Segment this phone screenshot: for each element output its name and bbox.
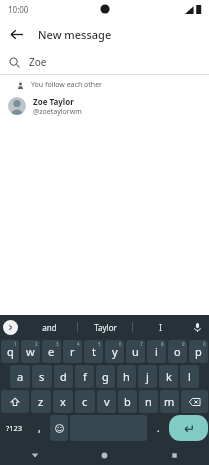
staticText: 1 <box>14 341 17 347</box>
staticText: and <box>42 322 57 333</box>
button[interactable]: v <box>97 390 116 413</box>
button[interactable]: q <box>1 340 19 363</box>
button[interactable]: s <box>32 365 52 388</box>
button[interactable]: a <box>10 365 30 388</box>
button[interactable]: r <box>63 340 82 363</box>
button[interactable]: Back <box>0 18 32 50</box>
staticText: f <box>83 369 87 384</box>
button[interactable]: Taylor <box>78 315 132 339</box>
staticText: I <box>159 322 162 333</box>
staticText: z <box>38 394 44 409</box>
button[interactable]: Back <box>0 445 69 465</box>
staticText: l <box>188 369 191 384</box>
staticText: v <box>104 394 110 409</box>
staticText: 2 <box>35 341 38 347</box>
button[interactable]: k <box>159 365 178 388</box>
staticText: h <box>123 369 130 384</box>
staticText: g <box>102 369 109 384</box>
button[interactable]: I <box>133 315 187 339</box>
staticText: o <box>174 344 181 359</box>
staticText: n <box>145 394 152 409</box>
staticText: t <box>92 344 96 359</box>
button[interactable]: t <box>84 340 103 363</box>
staticText: p <box>195 344 202 359</box>
staticText: r <box>70 344 75 359</box>
staticText: ?123 <box>6 423 23 433</box>
button[interactable]: Emoji <box>50 415 68 441</box>
button[interactable]: and <box>22 315 77 339</box>
button[interactable]: n <box>139 390 158 413</box>
button[interactable]: p <box>189 340 208 363</box>
button[interactable]: z <box>31 390 51 413</box>
button[interactable]: Expand <box>3 320 18 335</box>
button[interactable]: Enter <box>169 415 208 441</box>
staticText: Zoe Taylor <box>33 96 74 107</box>
staticText: New message <box>38 27 112 42</box>
button[interactable]: Zoe Taylor <box>0 93 209 119</box>
staticText: 10:00 <box>8 4 29 15</box>
staticText: q <box>7 344 14 359</box>
button[interactable]: u <box>126 340 145 363</box>
staticText: m <box>164 394 175 409</box>
button[interactable]: x <box>53 390 73 413</box>
button[interactable]: Home <box>69 445 139 465</box>
button[interactable]: y <box>105 340 124 363</box>
staticText: 5 <box>98 341 101 347</box>
staticText: 6 <box>119 341 122 347</box>
button[interactable]: m <box>160 390 179 413</box>
staticText: 0 <box>203 341 206 347</box>
staticText: 3 <box>56 341 59 347</box>
staticText: c <box>82 394 88 409</box>
staticText: s <box>39 369 45 384</box>
staticText: 4 <box>77 341 80 347</box>
button[interactable]: h <box>117 365 136 388</box>
button[interactable]: ?123 <box>1 415 28 441</box>
button[interactable]: Backspace <box>181 390 208 413</box>
staticText: @zoetaylorwm <box>33 107 82 117</box>
staticText: . <box>157 421 160 435</box>
button[interactable]: f <box>75 365 94 388</box>
staticText: b <box>124 394 131 409</box>
staticText: You follow each other <box>31 80 102 90</box>
button[interactable]: e <box>42 340 61 363</box>
staticText: j <box>146 369 149 384</box>
staticText: y <box>112 344 118 359</box>
staticText: 9 <box>182 341 185 347</box>
button[interactable]: . <box>149 415 167 441</box>
staticText: Zoe <box>29 55 47 69</box>
staticText: i <box>155 344 158 359</box>
button[interactable]: g <box>96 365 115 388</box>
staticText: k <box>166 369 172 384</box>
button[interactable]: , <box>30 415 48 441</box>
staticText: Taylor <box>94 322 117 333</box>
button[interactable]: w <box>21 340 40 363</box>
button[interactable]: c <box>75 390 95 413</box>
staticText: a <box>17 369 24 384</box>
button[interactable]: j <box>138 365 157 388</box>
staticText: u <box>132 344 139 359</box>
staticText: 8 <box>161 341 164 347</box>
button[interactable]: Voice input <box>190 320 204 334</box>
staticText: x <box>60 394 66 409</box>
staticText: d <box>60 369 67 384</box>
button[interactable]: o <box>168 340 187 363</box>
button[interactable]: i <box>147 340 166 363</box>
staticText: 7 <box>140 341 143 347</box>
button[interactable]: l <box>180 365 199 388</box>
button[interactable]: d <box>54 365 73 388</box>
staticText: e <box>48 344 55 359</box>
button[interactable]: Zoe <box>0 50 209 74</box>
button[interactable]: b <box>118 390 137 413</box>
button[interactable]: Shift <box>1 390 29 413</box>
staticText: , <box>38 421 41 435</box>
staticText: w <box>26 344 35 359</box>
button[interactable]: Recents <box>139 445 209 465</box>
